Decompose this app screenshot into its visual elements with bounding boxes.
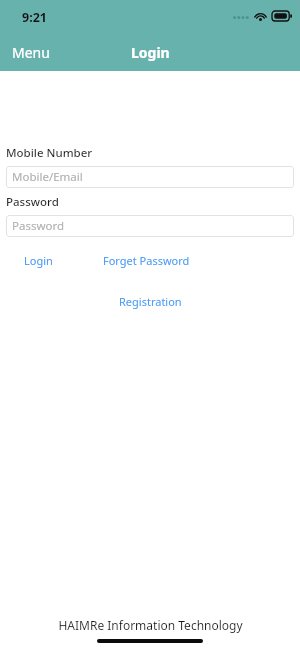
staticText: Login [24, 253, 53, 268]
staticText: HAIMRe Information Technology [58, 617, 243, 633]
button[interactable]: Login [19, 249, 58, 272]
staticText: Registration [119, 294, 182, 309]
button[interactable]: Menu [0, 37, 60, 68]
staticText: 9:21 [22, 9, 47, 26]
staticText: Forget Password [103, 253, 190, 268]
staticText: Login [131, 43, 170, 62]
staticText: Password [6, 194, 59, 210]
staticText: Mobile/Email [12, 169, 83, 185]
staticText: Mobile Number [6, 145, 93, 161]
button[interactable]: Registration [114, 290, 187, 313]
staticText: Password [12, 218, 65, 234]
staticText: Menu [12, 43, 50, 62]
button[interactable]: Forget Password [98, 249, 195, 272]
button[interactable]: Password [6, 215, 294, 237]
button[interactable]: Mobile/Email [6, 166, 294, 188]
